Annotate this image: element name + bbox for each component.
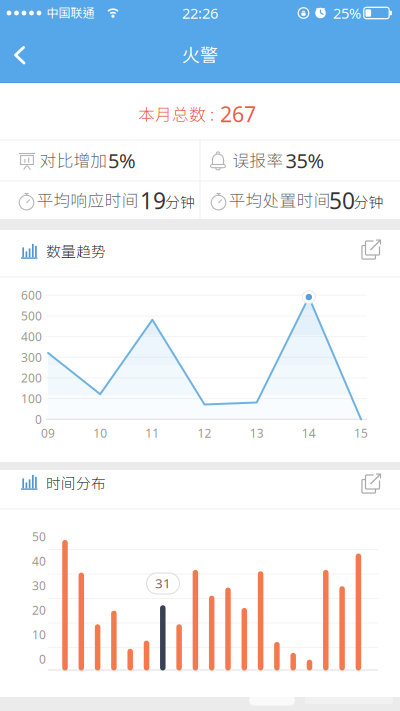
staticText: 时间分布	[46, 475, 106, 492]
staticText: 200	[21, 370, 42, 386]
staticText: 数量趋势	[46, 243, 106, 260]
staticText: 11	[145, 425, 159, 441]
button[interactable]: Back	[0, 25, 44, 83]
staticText: 50	[32, 528, 46, 544]
staticText: 40	[32, 553, 46, 569]
staticText: 22:26	[182, 3, 218, 23]
staticText: 平均处置时间	[228, 191, 330, 210]
staticText: 400	[21, 329, 42, 344]
staticText: 09	[41, 425, 55, 441]
staticText: 10	[93, 425, 107, 441]
staticText: 100	[21, 391, 42, 406]
staticText: 15	[354, 425, 368, 441]
staticText: 13	[250, 425, 264, 441]
staticText: 分钟	[353, 193, 383, 211]
staticText: 对比增加	[39, 151, 107, 170]
staticText: 30	[32, 577, 46, 593]
staticText: 10	[32, 626, 46, 642]
staticText: 14	[302, 425, 316, 441]
staticText: 19	[140, 185, 166, 215]
button[interactable]: Export	[352, 466, 388, 502]
staticText: 35%	[285, 147, 324, 174]
staticText: 25%	[333, 3, 361, 23]
staticText: 5%	[108, 147, 136, 174]
staticText: 20	[32, 602, 46, 618]
button[interactable]: Export	[352, 232, 388, 268]
staticText: 误报率	[232, 151, 283, 170]
staticText: 0	[35, 411, 42, 427]
staticText: 267	[220, 100, 256, 128]
staticText: 火警	[182, 44, 218, 66]
staticText: 300	[21, 349, 42, 365]
staticText: 50	[329, 185, 355, 215]
staticText: 31	[155, 574, 171, 592]
staticText: 600	[21, 287, 42, 303]
staticText: 0	[39, 651, 46, 667]
staticText: 500	[21, 308, 42, 324]
staticText: 中国联通	[46, 6, 94, 20]
staticText: 本月总数 :	[138, 105, 218, 124]
staticText: 12	[197, 425, 211, 441]
staticText: 分钟	[165, 193, 195, 211]
staticText: 平均响应时间	[36, 191, 138, 210]
